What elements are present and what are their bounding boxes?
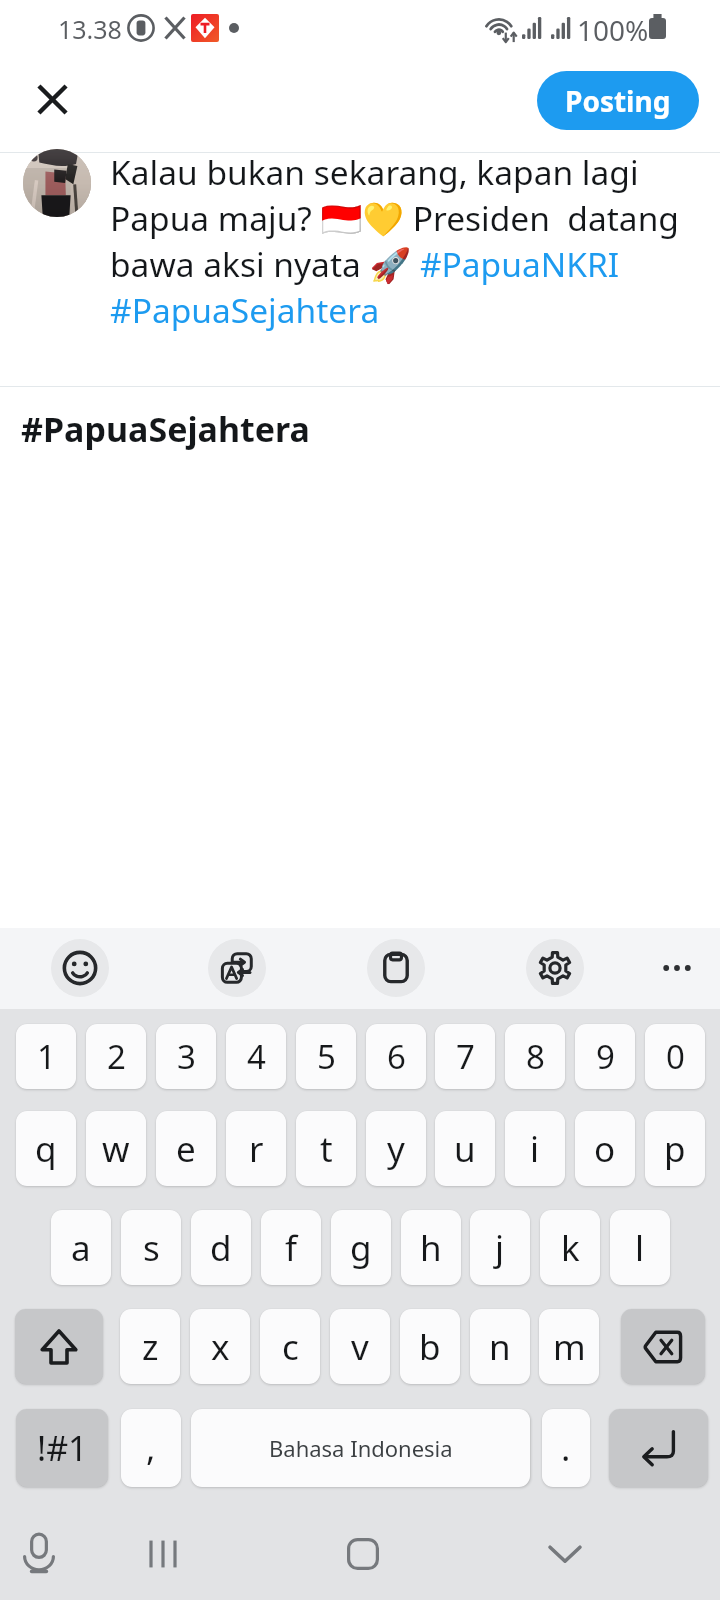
staticText: 0 xyxy=(666,1034,685,1079)
button[interactable]: Voice input xyxy=(11,1525,67,1581)
staticText: 13.38 xyxy=(58,12,122,46)
button[interactable]: i xyxy=(505,1111,565,1186)
staticText: t xyxy=(320,1125,333,1173)
button[interactable]: z xyxy=(120,1309,180,1384)
button[interactable]: x xyxy=(190,1309,250,1384)
button[interactable]: r xyxy=(226,1111,286,1186)
button[interactable]: g xyxy=(331,1210,391,1285)
staticText: l xyxy=(635,1224,645,1272)
staticText: 7 xyxy=(456,1034,475,1079)
button[interactable]: j xyxy=(470,1210,530,1285)
staticText: q xyxy=(35,1125,57,1173)
button[interactable]: v xyxy=(330,1309,390,1384)
staticText: 4 xyxy=(247,1034,266,1079)
staticText: !#1 xyxy=(37,1425,88,1471)
button[interactable]: y xyxy=(366,1111,426,1186)
button[interactable]: 4 xyxy=(226,1024,286,1089)
button[interactable]: Translate xyxy=(208,939,266,997)
staticText: 1 xyxy=(37,1034,56,1079)
button[interactable]: Backspace xyxy=(621,1309,705,1384)
button[interactable]: 3 xyxy=(156,1024,216,1089)
button[interactable]: Close xyxy=(14,61,90,137)
staticText: p xyxy=(664,1125,686,1173)
button[interactable]: Posting xyxy=(537,71,699,130)
staticText: g xyxy=(350,1224,372,1272)
button[interactable]: o xyxy=(575,1111,635,1186)
button[interactable]: Hide keyboard xyxy=(537,1526,593,1582)
button[interactable]: a xyxy=(51,1210,111,1285)
staticText: Bahasa Indonesia xyxy=(269,1433,453,1463)
staticText: c xyxy=(282,1323,299,1371)
button[interactable]: Enter xyxy=(609,1409,708,1487)
staticText: a xyxy=(71,1224,91,1272)
button[interactable]: More options xyxy=(648,939,706,997)
staticText: x xyxy=(211,1323,230,1371)
button[interactable]: h xyxy=(401,1210,461,1285)
button[interactable]: q xyxy=(16,1111,76,1186)
staticText: 6 xyxy=(387,1034,406,1079)
staticText: 8 xyxy=(526,1034,545,1079)
button[interactable]: Home xyxy=(335,1526,391,1582)
staticText: w xyxy=(102,1125,130,1173)
staticText: h xyxy=(420,1224,442,1272)
staticText: 2 xyxy=(107,1034,126,1079)
staticText: v xyxy=(351,1323,369,1371)
button[interactable]: e xyxy=(156,1111,216,1186)
button[interactable]: 5 xyxy=(296,1024,356,1089)
button[interactable]: 2 xyxy=(86,1024,146,1089)
staticText: 3 xyxy=(177,1034,196,1079)
staticText: u xyxy=(454,1125,476,1173)
button[interactable]: !#1 xyxy=(16,1409,108,1487)
staticText: r xyxy=(249,1125,264,1173)
button[interactable]: Recents xyxy=(135,1526,191,1582)
staticText: e xyxy=(176,1125,196,1173)
button[interactable]: u xyxy=(435,1111,495,1186)
button[interactable]: Settings xyxy=(526,939,584,997)
staticText: Kalau bukan sekarang, kapan lagi Papua m… xyxy=(110,149,714,333)
button[interactable]: Clipboard xyxy=(367,939,425,997)
staticText: , xyxy=(146,1424,156,1472)
button[interactable]: 8 xyxy=(505,1024,565,1089)
staticText: y xyxy=(387,1125,405,1173)
button[interactable]: w xyxy=(86,1111,146,1186)
staticText: j xyxy=(495,1224,505,1272)
staticText: 9 xyxy=(596,1034,615,1079)
button[interactable]: #PapuaSejahtera xyxy=(0,394,720,464)
staticText: z xyxy=(142,1323,159,1371)
button[interactable]: c xyxy=(260,1309,320,1384)
button[interactable]: d xyxy=(191,1210,251,1285)
staticText: m xyxy=(553,1323,586,1371)
staticText: #PapuaSejahtera xyxy=(21,406,310,452)
button[interactable]: Shift xyxy=(15,1309,103,1384)
staticText: i xyxy=(530,1125,540,1173)
staticText: o xyxy=(594,1125,616,1173)
button[interactable]: , xyxy=(121,1409,181,1487)
staticText: . xyxy=(561,1424,571,1472)
staticText: k xyxy=(561,1224,580,1272)
staticText: 5 xyxy=(317,1034,336,1079)
button[interactable]: m xyxy=(539,1309,599,1384)
staticText: f xyxy=(285,1224,298,1272)
button[interactable]: 0 xyxy=(645,1024,705,1089)
button[interactable]: n xyxy=(470,1309,530,1384)
button[interactable]: b xyxy=(400,1309,460,1384)
button[interactable]: t xyxy=(296,1111,356,1186)
button[interactable]: Bahasa Indonesia xyxy=(191,1409,530,1487)
button[interactable]: 7 xyxy=(435,1024,495,1089)
button[interactable]: s xyxy=(121,1210,181,1285)
button[interactable]: Emoji xyxy=(51,939,109,997)
button[interactable]: k xyxy=(540,1210,600,1285)
staticText: 100% xyxy=(577,11,649,49)
button[interactable]: l xyxy=(610,1210,670,1285)
button[interactable]: p xyxy=(645,1111,705,1186)
staticText: s xyxy=(143,1224,160,1272)
button[interactable]: f xyxy=(261,1210,321,1285)
staticText: b xyxy=(419,1323,441,1371)
button[interactable]: 1 xyxy=(16,1024,76,1089)
button[interactable]: 6 xyxy=(366,1024,426,1089)
staticText: d xyxy=(210,1224,232,1272)
staticText: n xyxy=(489,1323,511,1371)
button[interactable]: 9 xyxy=(575,1024,635,1089)
button[interactable]: . xyxy=(542,1409,590,1487)
staticText: Posting xyxy=(565,82,671,120)
